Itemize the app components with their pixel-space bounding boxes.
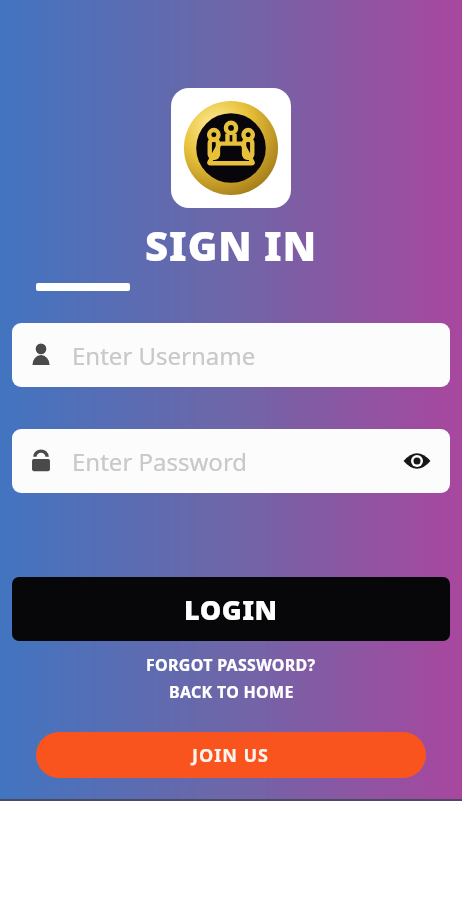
button[interactable]: BACK TO HOME <box>159 680 304 704</box>
button[interactable]: Show password <box>400 444 434 478</box>
staticText: FORGOT PASSWORD? <box>146 654 316 676</box>
staticText: Enter Password <box>72 445 248 478</box>
button[interactable]: Username field <box>12 323 450 387</box>
button[interactable]: FORGOT PASSWORD? <box>136 653 326 677</box>
staticText: JOIN US <box>192 743 270 768</box>
button[interactable]: LOGIN <box>12 577 450 641</box>
staticText: SIGN IN <box>145 218 317 272</box>
staticText: LOGIN <box>184 591 278 628</box>
button[interactable]: JOIN US <box>36 732 426 778</box>
button[interactable]: Password field <box>12 429 450 493</box>
staticText: BACK TO HOME <box>169 681 294 703</box>
other: App logo <box>171 88 291 208</box>
staticText: Enter Username <box>72 339 256 372</box>
